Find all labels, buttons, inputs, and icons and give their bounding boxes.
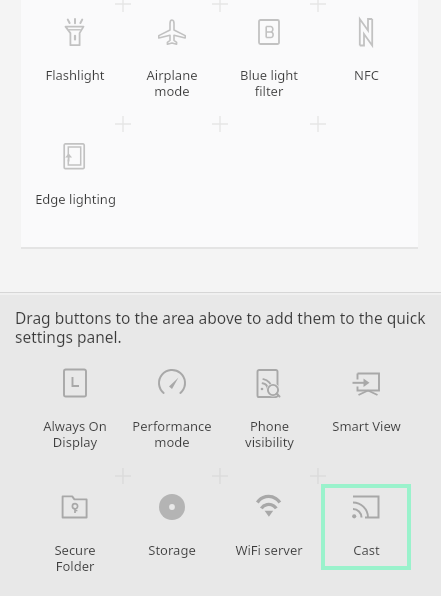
- button[interactable]: Phone visibility: [224, 360, 314, 446]
- button[interactable]: NFC: [321, 9, 411, 95]
- button[interactable]: Storage: [127, 484, 217, 570]
- button[interactable]: Always On Display: [30, 360, 120, 446]
- staticText: NFC: [354, 66, 379, 84]
- button[interactable]: Performance mode: [127, 360, 217, 446]
- staticText: Blue light filter: [240, 66, 298, 100]
- staticText: Storage: [148, 541, 196, 559]
- button[interactable]: Cast: [321, 484, 411, 570]
- staticText: Phone visibility: [245, 417, 294, 451]
- staticText: WiFi server: [235, 541, 303, 559]
- staticText: Always On Display: [43, 417, 107, 451]
- button[interactable]: Edge lighting: [30, 133, 120, 219]
- button[interactable]: Flashlight: [30, 9, 120, 95]
- staticText: Drag buttons to the area above to add th…: [15, 307, 426, 347]
- button[interactable]: Airplane mode: [127, 9, 217, 95]
- staticText: Smart View: [332, 417, 401, 435]
- staticText: Secure Folder: [54, 541, 96, 575]
- button[interactable]: WiFi server: [224, 484, 314, 570]
- staticText: Edge lighting: [35, 190, 116, 208]
- staticText: Flashlight: [45, 66, 105, 84]
- staticText: Cast: [353, 541, 380, 559]
- button[interactable]: Blue light filter: [224, 9, 314, 95]
- button[interactable]: Secure Folder: [30, 484, 120, 570]
- button[interactable]: Smart View: [321, 360, 411, 446]
- staticText: Performance mode: [132, 417, 212, 451]
- staticText: Airplane mode: [146, 66, 198, 100]
